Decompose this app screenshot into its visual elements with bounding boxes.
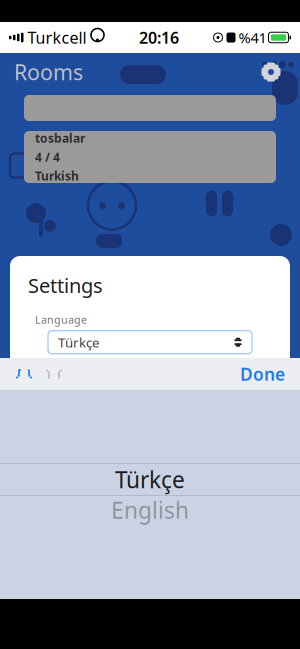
staticText: Türkçe — [58, 333, 100, 351]
button[interactable]: tosbalar — [24, 131, 276, 183]
button[interactable]: Done — [234, 356, 291, 391]
staticText: Done — [240, 362, 285, 385]
button[interactable] — [24, 95, 276, 121]
staticText: tosbalar — [35, 130, 85, 146]
staticText: Settings — [28, 272, 103, 299]
staticText: Türkçe — [115, 464, 185, 494]
staticText: 4 / 4 — [35, 149, 60, 165]
button[interactable]: Next field — [39, 359, 69, 389]
button[interactable]: Settings — [256, 57, 286, 87]
staticText: Language — [35, 313, 87, 327]
staticText: Rooms — [14, 58, 83, 86]
button[interactable]: Previous field — [9, 359, 39, 389]
button[interactable]: Türkçe — [0, 464, 300, 495]
staticText: English — [111, 495, 189, 525]
staticText: %41 — [238, 28, 266, 47]
button[interactable]: English — [0, 496, 300, 524]
staticText: 20:16 — [139, 27, 179, 48]
staticText: Turkish — [35, 168, 79, 184]
button[interactable]: Türkçe — [48, 331, 252, 354]
staticText: Turkcell — [27, 27, 86, 48]
